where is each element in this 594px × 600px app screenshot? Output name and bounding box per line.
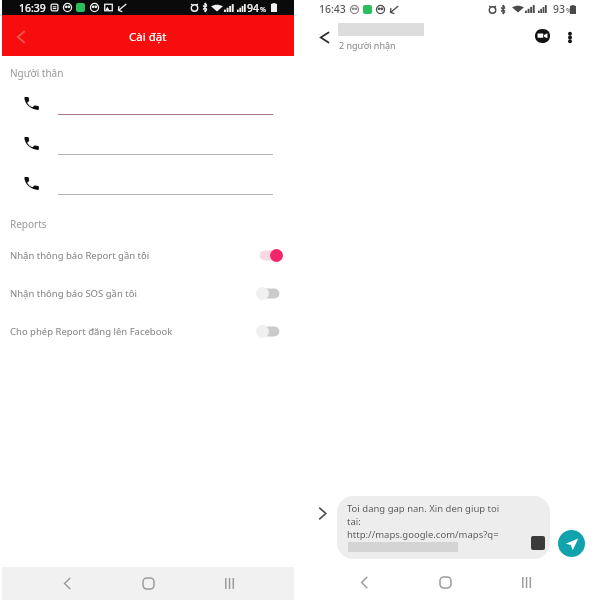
- staticText: %: [260, 5, 266, 15]
- button[interactable]: Nhận thông báo Report gần tôi: [2, 236, 294, 274]
- button[interactable]: Back: [8, 23, 34, 49]
- button[interactable]: Nhận thông báo SOS gần tôi: [2, 274, 294, 312]
- staticText: Người thân: [10, 66, 64, 80]
- button[interactable]: Home: [425, 565, 465, 600]
- staticText: 93: [553, 2, 566, 16]
- button[interactable]: Back: [312, 27, 336, 51]
- button[interactable]: Video call: [527, 21, 557, 51]
- staticText: Reports: [10, 217, 47, 231]
- staticText: 94: [247, 1, 260, 15]
- button[interactable]: Contact phone number: [2, 94, 294, 134]
- staticText: 2 người nhận: [339, 39, 396, 51]
- staticText: Nhận thông báo Report gần tôi: [10, 249, 150, 262]
- button[interactable]: Back: [344, 565, 384, 600]
- staticText: http://maps.google.com/maps?q=: [347, 528, 499, 541]
- staticText: Toi dang gap nan. Xin den giup toi: [347, 502, 500, 515]
- staticText: 16:43: [319, 2, 346, 16]
- staticText: Cho phép Report đăng lên Facebook: [10, 325, 173, 338]
- button[interactable]: More options: [558, 25, 582, 49]
- button[interactable]: Recents: [506, 565, 546, 600]
- staticText: tai:: [347, 515, 361, 528]
- button[interactable]: Contact phone number: [2, 134, 294, 174]
- button[interactable]: Cho phép Report đăng lên Facebook: [2, 312, 294, 350]
- button[interactable]: Recents: [209, 567, 249, 600]
- staticText: Cài đặt: [129, 29, 167, 45]
- button[interactable]: Send: [558, 530, 585, 557]
- button[interactable]: Contact phone number: [2, 174, 294, 214]
- button[interactable]: Toi dang gap nan. Xin den giup toi: [337, 496, 550, 559]
- button[interactable]: Home: [128, 567, 168, 600]
- staticText: 16:39: [19, 1, 46, 15]
- button[interactable]: Back: [47, 567, 87, 600]
- staticText: %: [566, 6, 572, 16]
- staticText: Nhận thông báo SOS gần tôi: [10, 287, 137, 300]
